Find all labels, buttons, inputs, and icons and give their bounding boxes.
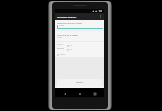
staticText: AM: [70, 45, 73, 47]
button[interactable]: PM: [67, 49, 73, 51]
button[interactable]: Home: [77, 91, 82, 96]
staticText: Schedule Builder: [57, 16, 77, 19]
button[interactable]: AM: [67, 45, 73, 47]
staticText: Start time: [57, 44, 64, 46]
button[interactable]: More options: [98, 14, 103, 19]
staticText: minutes: [57, 37, 63, 39]
button[interactable]: GENERATE: [57, 79, 102, 87]
staticText: PM: [70, 49, 73, 51]
staticText: How long for a break?: [57, 34, 79, 37]
staticText: GENERATE: [76, 82, 83, 84]
staticText: Maximum time for a task?: [57, 22, 82, 25]
button[interactable]: Maximum time for a task?: [55, 20, 104, 30]
button[interactable]: Set time: [57, 54, 66, 56]
staticText: Minutes: [59, 25, 65, 27]
button[interactable]: Back: [62, 91, 67, 96]
button[interactable]: How long for a break?: [55, 31, 104, 41]
staticText: Set time: [60, 54, 66, 56]
button[interactable]: Recents: [92, 91, 97, 96]
